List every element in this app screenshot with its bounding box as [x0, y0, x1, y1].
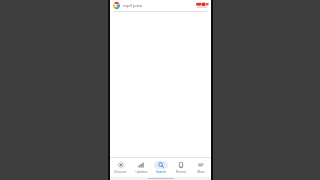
button[interactable]: More: [191, 158, 211, 177]
staticText: More: [197, 170, 205, 174]
staticText: Discover: [114, 170, 127, 174]
button[interactable]: Recent: [171, 158, 191, 177]
staticText: Recent: [176, 170, 186, 174]
button[interactable]: App logo: [196, 2, 209, 9]
button[interactable]: Discover: [110, 158, 131, 177]
staticText: Search: [156, 170, 166, 174]
staticText: Updates: [135, 170, 148, 174]
button[interactable]: Search: [151, 158, 171, 177]
staticText: mp3 juice: [123, 3, 194, 9]
button[interactable]: mp3 juice: [110, 0, 211, 11]
button[interactable]: Updates: [131, 158, 151, 177]
